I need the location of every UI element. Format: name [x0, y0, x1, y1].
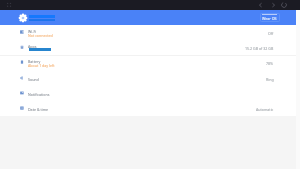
- button[interactable]: Battery: [0, 55, 300, 70]
- staticText: Off: [268, 31, 274, 36]
- staticText: Automatic: [256, 107, 274, 112]
- staticText: Sound: [28, 77, 39, 82]
- button[interactable]: Wi-Fi: [0, 25, 300, 40]
- button[interactable]: Notifications: [0, 86, 300, 101]
- staticText: Apps: [28, 44, 37, 49]
- button[interactable]: Sound: [0, 71, 300, 86]
- staticText: Battery: [28, 59, 41, 64]
- button[interactable]: Settings: [19, 14, 27, 22]
- staticText: Ring: [266, 77, 274, 82]
- button[interactable]: Date & time: [0, 101, 300, 116]
- staticText: Not connected: [28, 33, 53, 38]
- staticText: Date & time: [28, 107, 49, 112]
- staticText: Wi-Fi: [28, 29, 37, 34]
- staticText: Notifications: [28, 92, 50, 97]
- staticText: 78%: [266, 61, 274, 66]
- staticText: Wear OS: [262, 16, 277, 21]
- staticText: 15.2 GB of 32 GB: [245, 46, 274, 51]
- button[interactable]: [260, 13, 280, 22]
- button[interactable]: Apps: [0, 40, 300, 55]
- staticText: About 1 day left: [28, 63, 55, 68]
